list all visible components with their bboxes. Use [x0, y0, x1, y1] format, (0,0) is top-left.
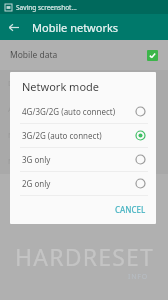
staticText: Access Point Names [8, 104, 79, 114]
staticText: Mobile networks [32, 20, 119, 35]
staticText: Network operators [8, 130, 75, 140]
button[interactable]: Back [0, 14, 26, 40]
button[interactable]: Network operators [0, 122, 168, 148]
staticText: Data roaming [8, 78, 57, 88]
staticText: 3G only [22, 154, 51, 165]
staticText: Network mode [8, 156, 61, 166]
button[interactable]: 3G only [10, 148, 156, 171]
button[interactable]: CANCEL [105, 200, 156, 219]
button[interactable]: Network mode [0, 148, 168, 174]
staticText: Saving screenshot... [16, 3, 77, 12]
staticText: 4G/3G/2G (auto connect) [22, 106, 116, 117]
button[interactable]: Access Point Names [0, 96, 168, 122]
staticText: HARDRESET [15, 241, 154, 272]
staticText: CANCEL [115, 204, 146, 215]
button[interactable]: 2G only [10, 172, 156, 195]
staticText: 2G only [22, 178, 51, 189]
staticText: 3G/2G (auto connect) [22, 130, 102, 141]
button[interactable]: 4G/3G/2G (auto connect) [10, 100, 156, 123]
button[interactable]: Mobile data [0, 40, 168, 70]
button[interactable]: Mobile data enabled [147, 50, 158, 61]
staticText: INFO [128, 272, 148, 282]
staticText: Network mode [22, 79, 100, 94]
button[interactable]: Data roaming [0, 70, 168, 96]
staticText: Mobile data [10, 49, 58, 61]
button[interactable]: 3G/2G (auto connect) [10, 124, 156, 147]
